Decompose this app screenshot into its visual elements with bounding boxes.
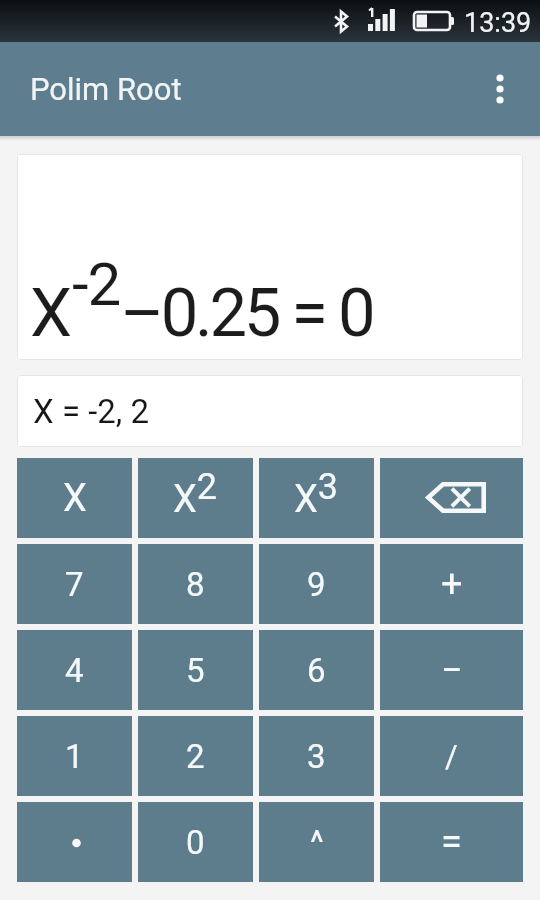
staticText: Polim Root — [30, 71, 182, 107]
button[interactable]: / — [380, 716, 523, 796]
button[interactable]: 6 — [259, 630, 374, 710]
button[interactable]: 4 — [17, 630, 132, 710]
button[interactable]: ^ — [259, 802, 374, 882]
button[interactable]: 2 — [138, 716, 253, 796]
button[interactable]: = — [380, 802, 523, 882]
staticText: 2 — [186, 737, 205, 776]
staticText: 8 — [186, 565, 205, 604]
staticText: 5 — [186, 651, 205, 690]
staticText: 13:39 — [464, 7, 532, 39]
staticText: / — [445, 738, 458, 774]
staticText: 1 — [65, 737, 84, 776]
button[interactable]: − — [380, 630, 523, 710]
staticText: 4 — [65, 651, 84, 690]
button[interactable]: 1 — [17, 716, 132, 796]
staticText: 0 — [186, 823, 205, 862]
staticText: 7 — [65, 565, 84, 604]
button[interactable]: 9 — [259, 544, 374, 624]
staticText: = — [441, 820, 462, 865]
staticText: ^ — [310, 823, 324, 862]
staticText: + — [441, 562, 463, 607]
button[interactable]: 0 — [138, 802, 253, 882]
button[interactable]: 3 — [259, 716, 374, 796]
button[interactable]: + — [380, 544, 523, 624]
button[interactable]: X2 — [138, 458, 253, 538]
button[interactable]: X = -2, 2 — [17, 375, 523, 447]
staticText: X-2–0.25 = 0 — [30, 249, 373, 352]
button[interactable]: 8 — [138, 544, 253, 624]
staticText: 3 — [307, 737, 326, 776]
staticText: X2 — [173, 466, 218, 521]
button[interactable] — [17, 802, 132, 882]
button[interactable] — [380, 458, 523, 538]
button[interactable]: 5 — [138, 630, 253, 710]
button[interactable]: X — [17, 458, 132, 538]
staticText: X — [63, 476, 87, 521]
staticText: X3 — [294, 466, 339, 521]
button[interactable]: X3 — [259, 458, 374, 538]
staticText: 6 — [307, 651, 326, 690]
button[interactable]: 7 — [17, 544, 132, 624]
staticText: X = -2, 2 — [33, 392, 150, 431]
staticText: − — [441, 648, 463, 693]
staticText: 9 — [307, 565, 326, 604]
button[interactable] — [460, 42, 540, 136]
button[interactable]: X-2–0.25 = 0 — [17, 154, 523, 360]
